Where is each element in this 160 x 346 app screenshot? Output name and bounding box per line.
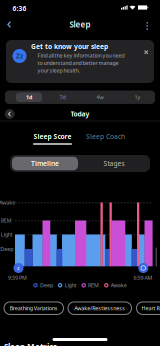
staticText: Get to know your sleep — [31, 42, 108, 51]
staticText: Heart Rate — [141, 305, 160, 312]
staticText: Zz — [16, 52, 23, 60]
staticText: REM — [1, 217, 12, 224]
button[interactable] — [146, 22, 148, 30]
staticText: 1d — [26, 94, 32, 101]
staticText: Sleep — [69, 19, 90, 30]
staticText: Timeline — [31, 159, 59, 168]
staticText: Deep — [0, 245, 13, 253]
button[interactable]: Sleep Coach — [80, 130, 130, 142]
staticText: your sleep health. — [37, 67, 79, 74]
staticText: Light — [64, 282, 76, 289]
staticText: 6:59 AM — [133, 274, 152, 281]
staticText: Find all the key information you need — [37, 52, 124, 59]
staticText: Breathing Variations — [10, 305, 58, 312]
staticText: 9:59 PM — [8, 274, 27, 281]
staticText: Sleep Coach — [86, 132, 125, 141]
staticText: Sleep Metrics — [4, 342, 57, 346]
staticText: 6:36 — [12, 4, 26, 13]
staticText: to understand and better manage — [37, 59, 118, 67]
button[interactable]: Timeline — [12, 157, 78, 170]
button[interactable] — [144, 50, 148, 54]
staticText: Stages — [103, 159, 124, 168]
staticText: 4w — [96, 94, 103, 101]
button[interactable]: Stages — [84, 157, 144, 170]
button[interactable]: Sleep Score — [27, 130, 77, 142]
staticText: Light — [1, 231, 13, 238]
button[interactable]: 4w — [85, 92, 115, 102]
staticText: Awake — [0, 199, 15, 206]
button[interactable]: Awake/Restlessness — [68, 302, 131, 314]
staticText: Sleep Score — [33, 132, 71, 141]
button[interactable]: 1d — [16, 92, 42, 102]
button[interactable]: 7d — [47, 92, 77, 102]
button[interactable] — [5, 109, 15, 119]
staticText: 7d — [59, 94, 65, 101]
button[interactable] — [7, 21, 11, 28]
staticText: z — [17, 264, 20, 272]
staticText: Deep — [40, 282, 53, 289]
button[interactable]: Heart Rate — [136, 302, 160, 314]
button[interactable]: 1y — [122, 92, 152, 102]
staticText: Awake/Restlessness — [74, 305, 125, 312]
staticText: REM — [88, 282, 99, 289]
button[interactable]: Breathing Variations — [4, 302, 63, 314]
staticText: Awake — [111, 282, 127, 289]
staticText: Today — [70, 110, 89, 118]
staticText: 1y — [134, 94, 140, 101]
